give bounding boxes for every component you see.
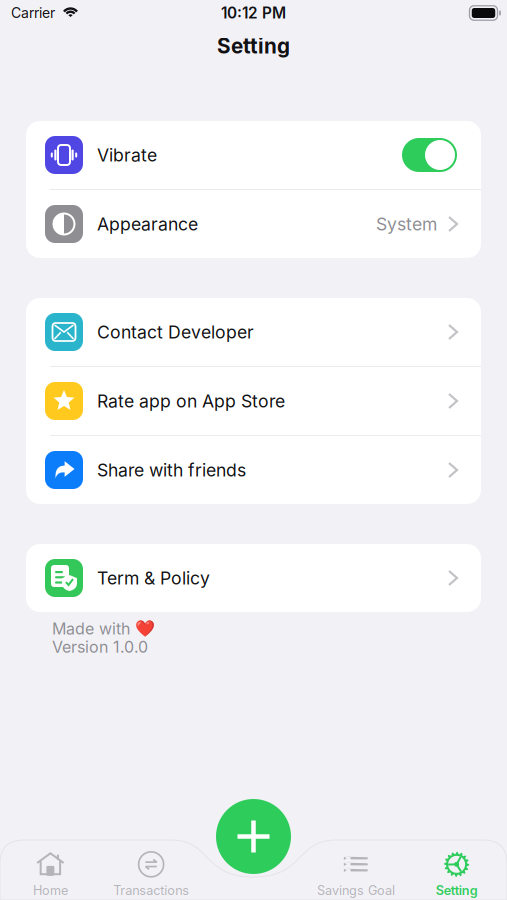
staticText: Carrier <box>11 4 55 21</box>
button[interactable]: Transactions <box>101 852 202 898</box>
staticText: Made with <box>52 619 130 638</box>
staticText: Appearance <box>97 213 198 235</box>
staticText: Home <box>33 883 68 898</box>
button[interactable]: Appearance <box>26 190 481 258</box>
staticText: 10:12 PM <box>221 4 286 22</box>
staticText: Transactions <box>113 883 189 898</box>
button[interactable]: Setting <box>406 852 507 898</box>
staticText: Vibrate <box>97 144 157 166</box>
staticText: Setting <box>436 883 478 898</box>
staticText: Savings Goal <box>317 883 395 898</box>
staticText: Share with friends <box>97 459 246 481</box>
staticText: Setting <box>217 33 290 58</box>
staticText: Term & Policy <box>97 567 210 589</box>
button[interactable]: Home <box>0 852 101 898</box>
button[interactable]: Term & Policy <box>26 544 481 612</box>
button[interactable]: Savings Goal <box>305 852 406 898</box>
button[interactable]: Rate app on App Store <box>26 367 481 435</box>
staticText: System <box>376 213 437 235</box>
staticText: Version 1.0.0 <box>52 637 148 657</box>
staticText: Contact Developer <box>97 321 254 343</box>
staticText: Rate app on App Store <box>97 390 285 412</box>
button[interactable]: Vibrate <box>26 121 481 189</box>
button[interactable]: Share with friends <box>26 436 481 504</box>
button[interactable]: Contact Developer <box>26 298 481 366</box>
staticText: ❤️ <box>135 619 155 638</box>
button[interactable]: Add <box>216 799 291 874</box>
